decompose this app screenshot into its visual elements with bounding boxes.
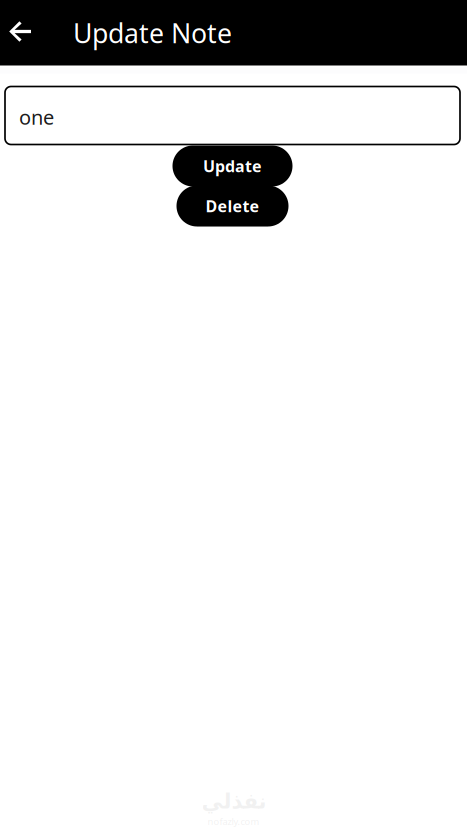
button[interactable]: Update (172, 145, 292, 186)
staticText: one (19, 104, 54, 130)
staticText: Update (203, 155, 262, 177)
staticText: nofazly.com (207, 815, 259, 827)
staticText: Update Note (73, 15, 232, 51)
staticText: Delete (205, 195, 259, 217)
button[interactable]: Back (0, 0, 41, 66)
staticText: نفذلي (201, 789, 266, 813)
button[interactable]: Delete (176, 185, 288, 226)
button[interactable]: one (5, 86, 460, 144)
